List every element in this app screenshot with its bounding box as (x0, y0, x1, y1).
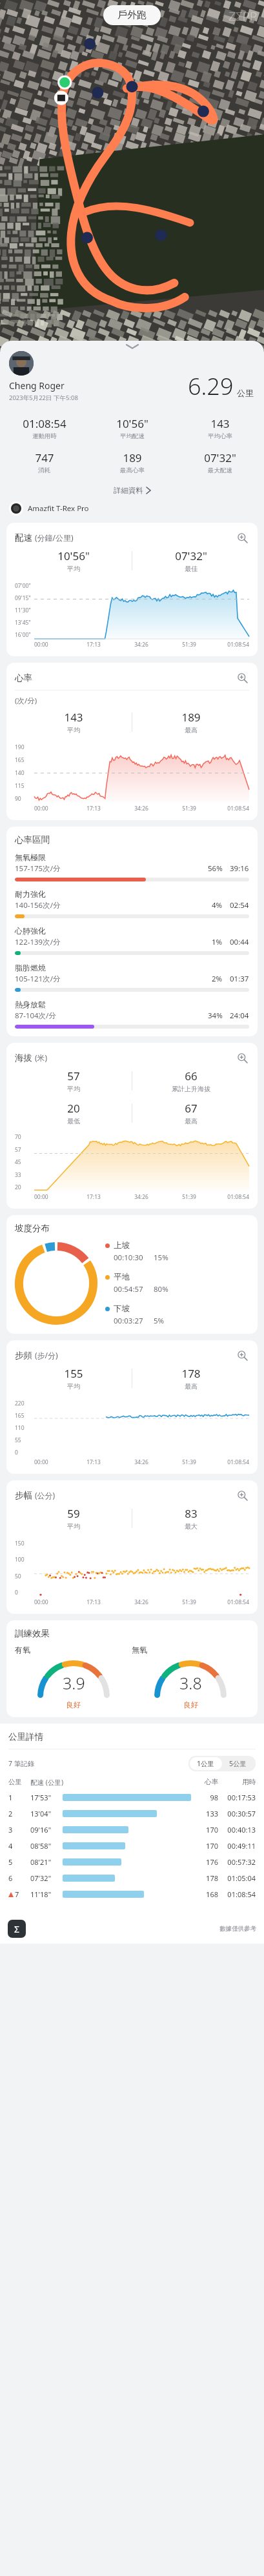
staticText: 176 (194, 1857, 218, 1867)
staticText: 01:37 (230, 974, 249, 984)
staticText: 脂肪燃燒 (15, 963, 46, 972)
staticText: 00:54:57 (114, 1284, 143, 1294)
staticText: 13'04" (30, 1809, 59, 1818)
staticText: (分鐘/公里) (35, 532, 74, 543)
staticText: 80% (154, 1284, 168, 1294)
staticText: 4% (212, 900, 223, 911)
staticText: 170 (194, 1825, 218, 1835)
staticText: 51:39 (165, 805, 213, 812)
staticText: 6 (8, 1873, 13, 1883)
staticText: 公里 (237, 388, 254, 398)
staticText: 坡度分布 (15, 1223, 50, 1234)
staticText: 最高 (185, 1382, 198, 1391)
staticText: 140-156次/分 (15, 900, 61, 911)
staticText: 6.29 (188, 370, 234, 402)
staticText: 最佳 (185, 565, 198, 573)
button[interactable]: 詳細資料 (0, 483, 264, 498)
button[interactable]: 4 (8, 1838, 256, 1854)
staticText: 配速 (公里) (30, 1778, 194, 1787)
staticText: (公分) (35, 1490, 56, 1500)
staticText: 09'16" (30, 1825, 59, 1835)
staticText: 心率區間 (15, 834, 50, 845)
staticText: 5% (154, 1316, 165, 1326)
staticText: 運動用時 (32, 432, 57, 440)
staticText: 0 (15, 1589, 18, 1596)
staticText: 最大配速 (208, 467, 232, 474)
staticText: 155 (64, 1366, 83, 1381)
staticText: 57 (15, 1146, 21, 1154)
staticText: 51:39 (165, 1458, 213, 1466)
staticText: 平均 (67, 1382, 80, 1391)
staticText: 17:13 (70, 1598, 117, 1606)
staticText: 133 (194, 1809, 218, 1818)
staticText: 下坡 (114, 1303, 130, 1314)
staticText: 98 (194, 1793, 218, 1802)
staticText: 16'00" (15, 631, 31, 639)
staticText: 平均 (67, 565, 80, 573)
button[interactable]: Expand chart (235, 1051, 249, 1065)
staticText: 01:08:54 (213, 805, 249, 812)
staticText: 178 (194, 1873, 218, 1883)
button[interactable]: 5公里 (222, 1757, 254, 1770)
staticText: 34:26 (117, 1458, 165, 1466)
staticText: 平均 (67, 1522, 80, 1531)
staticText: 07'32" (30, 1873, 59, 1883)
staticText: 00:00 (34, 1458, 70, 1466)
staticText: 00:49:11 (218, 1841, 256, 1851)
button[interactable]: 戶外跑 (103, 5, 161, 25)
staticText: 66 (185, 1069, 198, 1083)
staticText: 157-175次/分 (15, 863, 61, 874)
staticText: 20 (15, 1183, 21, 1191)
button[interactable]: 2 (8, 1806, 256, 1822)
staticText: 平均 (67, 1085, 80, 1093)
button[interactable]: Expand chart (235, 1488, 249, 1502)
staticText: 70 (15, 1133, 21, 1141)
button[interactable]: Zepp (8, 1920, 26, 1938)
staticText: 00:40:13 (218, 1825, 256, 1835)
staticText: 01:08:54 (218, 1889, 256, 1899)
staticText: 用時 (218, 1778, 256, 1786)
staticText: 公里詳情 (8, 1731, 43, 1742)
staticText: 數據僅供參考 (219, 1925, 256, 1933)
staticText: 189 (181, 710, 201, 725)
staticText: 00:44 (230, 937, 249, 947)
button[interactable]: Amazfit T-Rex Pro (9, 501, 264, 516)
staticText: 步頻 (15, 1350, 32, 1361)
staticText: 2% (212, 974, 223, 984)
staticText: 11'18" (30, 1889, 59, 1899)
button[interactable]: 7 (8, 1886, 256, 1902)
button[interactable]: Expand chart (235, 1348, 249, 1362)
staticText: 戶外跑 (117, 9, 147, 21)
staticText: 1公里 (197, 1759, 215, 1768)
staticText: 心率 (15, 672, 32, 683)
staticText: 00:00 (34, 1193, 70, 1201)
button[interactable]: 3 (8, 1822, 256, 1838)
staticText: 平地 (114, 1272, 130, 1282)
staticText: 5公里 (229, 1759, 247, 1768)
staticText: 消耗 (38, 467, 50, 474)
staticText: 01:08:54 (213, 1193, 249, 1201)
staticText: 3.9 (63, 1672, 85, 1694)
button[interactable]: 5 (8, 1854, 256, 1870)
staticText: 45 (15, 1158, 21, 1166)
staticText: 34:26 (117, 805, 165, 812)
button[interactable]: 1公里 (190, 1757, 222, 1770)
button[interactable]: Expand chart (235, 670, 249, 685)
button[interactable]: 6 (8, 1870, 256, 1886)
staticText: 115 (15, 782, 25, 790)
staticText: 34:26 (117, 1598, 165, 1606)
staticText: 訓練效果 (15, 1628, 50, 1639)
staticText: 50 (15, 1573, 21, 1580)
staticText: 海拔 (15, 1052, 32, 1063)
staticText: 無氧 (132, 1645, 147, 1655)
staticText: 17:13 (70, 1458, 117, 1466)
button[interactable]: 1 (8, 1789, 256, 1806)
staticText: 39:16 (230, 863, 249, 874)
button[interactable]: Expand chart (235, 530, 249, 545)
staticText: 08'21" (30, 1857, 59, 1867)
staticText: 15% (154, 1253, 168, 1263)
staticText: 34:26 (117, 641, 165, 649)
staticText: Cheng Roger (9, 379, 65, 392)
staticText: 01:08:54 (213, 641, 249, 649)
staticText: 心肺強化 (15, 926, 46, 936)
